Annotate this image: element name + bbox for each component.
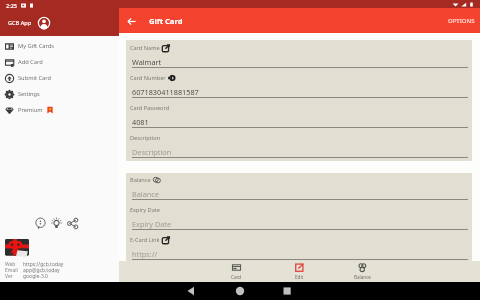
staticText: 4081 [132,117,149,127]
button[interactable]: Card [205,261,268,282]
staticText: Gift Card [149,16,183,26]
staticText: Balance [130,176,151,184]
staticText: Description [130,134,161,142]
staticText: GCB App [8,19,32,27]
button[interactable]: Tips [50,217,63,230]
button[interactable]: Settings [0,86,119,102]
button[interactable]: OPTIONS [443,11,480,31]
staticText: https://gcb.today [23,261,64,267]
staticText: Card [231,274,242,280]
staticText: 2:25 [6,2,17,9]
staticText: Balance [132,189,159,199]
staticText: Card Password [130,104,170,112]
staticText: 6071830411881587 [132,87,199,97]
staticText: Premium [18,106,43,114]
button[interactable]: Gift card promo [5,239,29,257]
staticText: google-3.0 [23,273,48,279]
staticText: Expiry Date [132,219,172,229]
button[interactable]: Back [124,14,138,28]
staticText: Add Card [18,58,43,66]
staticText: app@gcb.today [23,267,60,273]
staticText: Edit [295,274,304,280]
staticText: Balance [354,274,371,280]
staticText: Ver [5,273,13,279]
staticText: Walmart [132,57,162,67]
staticText: Web [5,261,16,267]
button[interactable]: My Gift Cards [0,38,119,54]
staticText: Email [5,267,18,273]
button[interactable]: Premium [0,102,119,118]
button[interactable]: Edit [268,261,331,282]
staticText: E-Card Link [130,236,160,244]
staticText: Card Number [130,74,166,82]
button[interactable]: Submit Card [0,70,119,86]
staticText: https:// [132,249,158,259]
button[interactable]: Balance [331,261,394,282]
staticText: OPTIONS [448,17,475,25]
button[interactable]: Help [34,217,47,230]
staticText: Description [132,147,172,157]
staticText: Settings [18,90,40,98]
button[interactable]: Share [66,217,79,230]
staticText: My Gift Cards [18,42,54,50]
staticText: Card Name [130,44,160,52]
staticText: Submit Card [18,74,51,82]
staticText: Expiry Date [130,206,160,214]
button[interactable]: Add Card [0,54,119,70]
